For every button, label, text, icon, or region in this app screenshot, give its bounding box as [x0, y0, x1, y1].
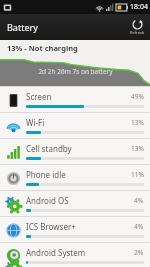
staticText: Screen	[26, 91, 131, 102]
staticText: 13%	[131, 144, 144, 153]
button[interactable]: Android System	[0, 242, 150, 267]
staticText: 4%	[134, 196, 144, 205]
staticText: Wi-Fi	[26, 117, 131, 128]
staticText: 2%	[134, 248, 144, 257]
staticText: Phone idle	[26, 169, 131, 180]
staticText: Android System	[26, 247, 134, 258]
button[interactable]: Refresh	[124, 14, 150, 40]
staticText: Android OS	[26, 195, 134, 206]
button[interactable]: Wi-Fi	[0, 112, 150, 138]
staticText: Battery	[7, 21, 38, 33]
button[interactable]: Phone idle	[0, 164, 150, 190]
staticText: Cell standby	[26, 143, 131, 154]
staticText: 13% - Not charging	[7, 43, 78, 53]
staticText: 4%	[134, 222, 144, 231]
staticText: Refresh	[130, 30, 145, 35]
staticText: 49%	[131, 92, 144, 101]
button[interactable]: 2d 2h 26m 7s on battery	[0, 56, 150, 86]
staticText: 11%	[131, 170, 144, 179]
staticText: ICS Browser+	[26, 221, 134, 232]
button[interactable]: Screen	[0, 86, 150, 112]
staticText: 18:04	[130, 2, 148, 12]
button[interactable]: Android OS	[0, 190, 150, 216]
staticText: 13%	[131, 118, 144, 127]
button[interactable]: ICS Browser+	[0, 216, 150, 242]
staticText: 2d 2h 26m 7s on battery	[38, 67, 113, 76]
button[interactable]: Cell standby	[0, 138, 150, 164]
